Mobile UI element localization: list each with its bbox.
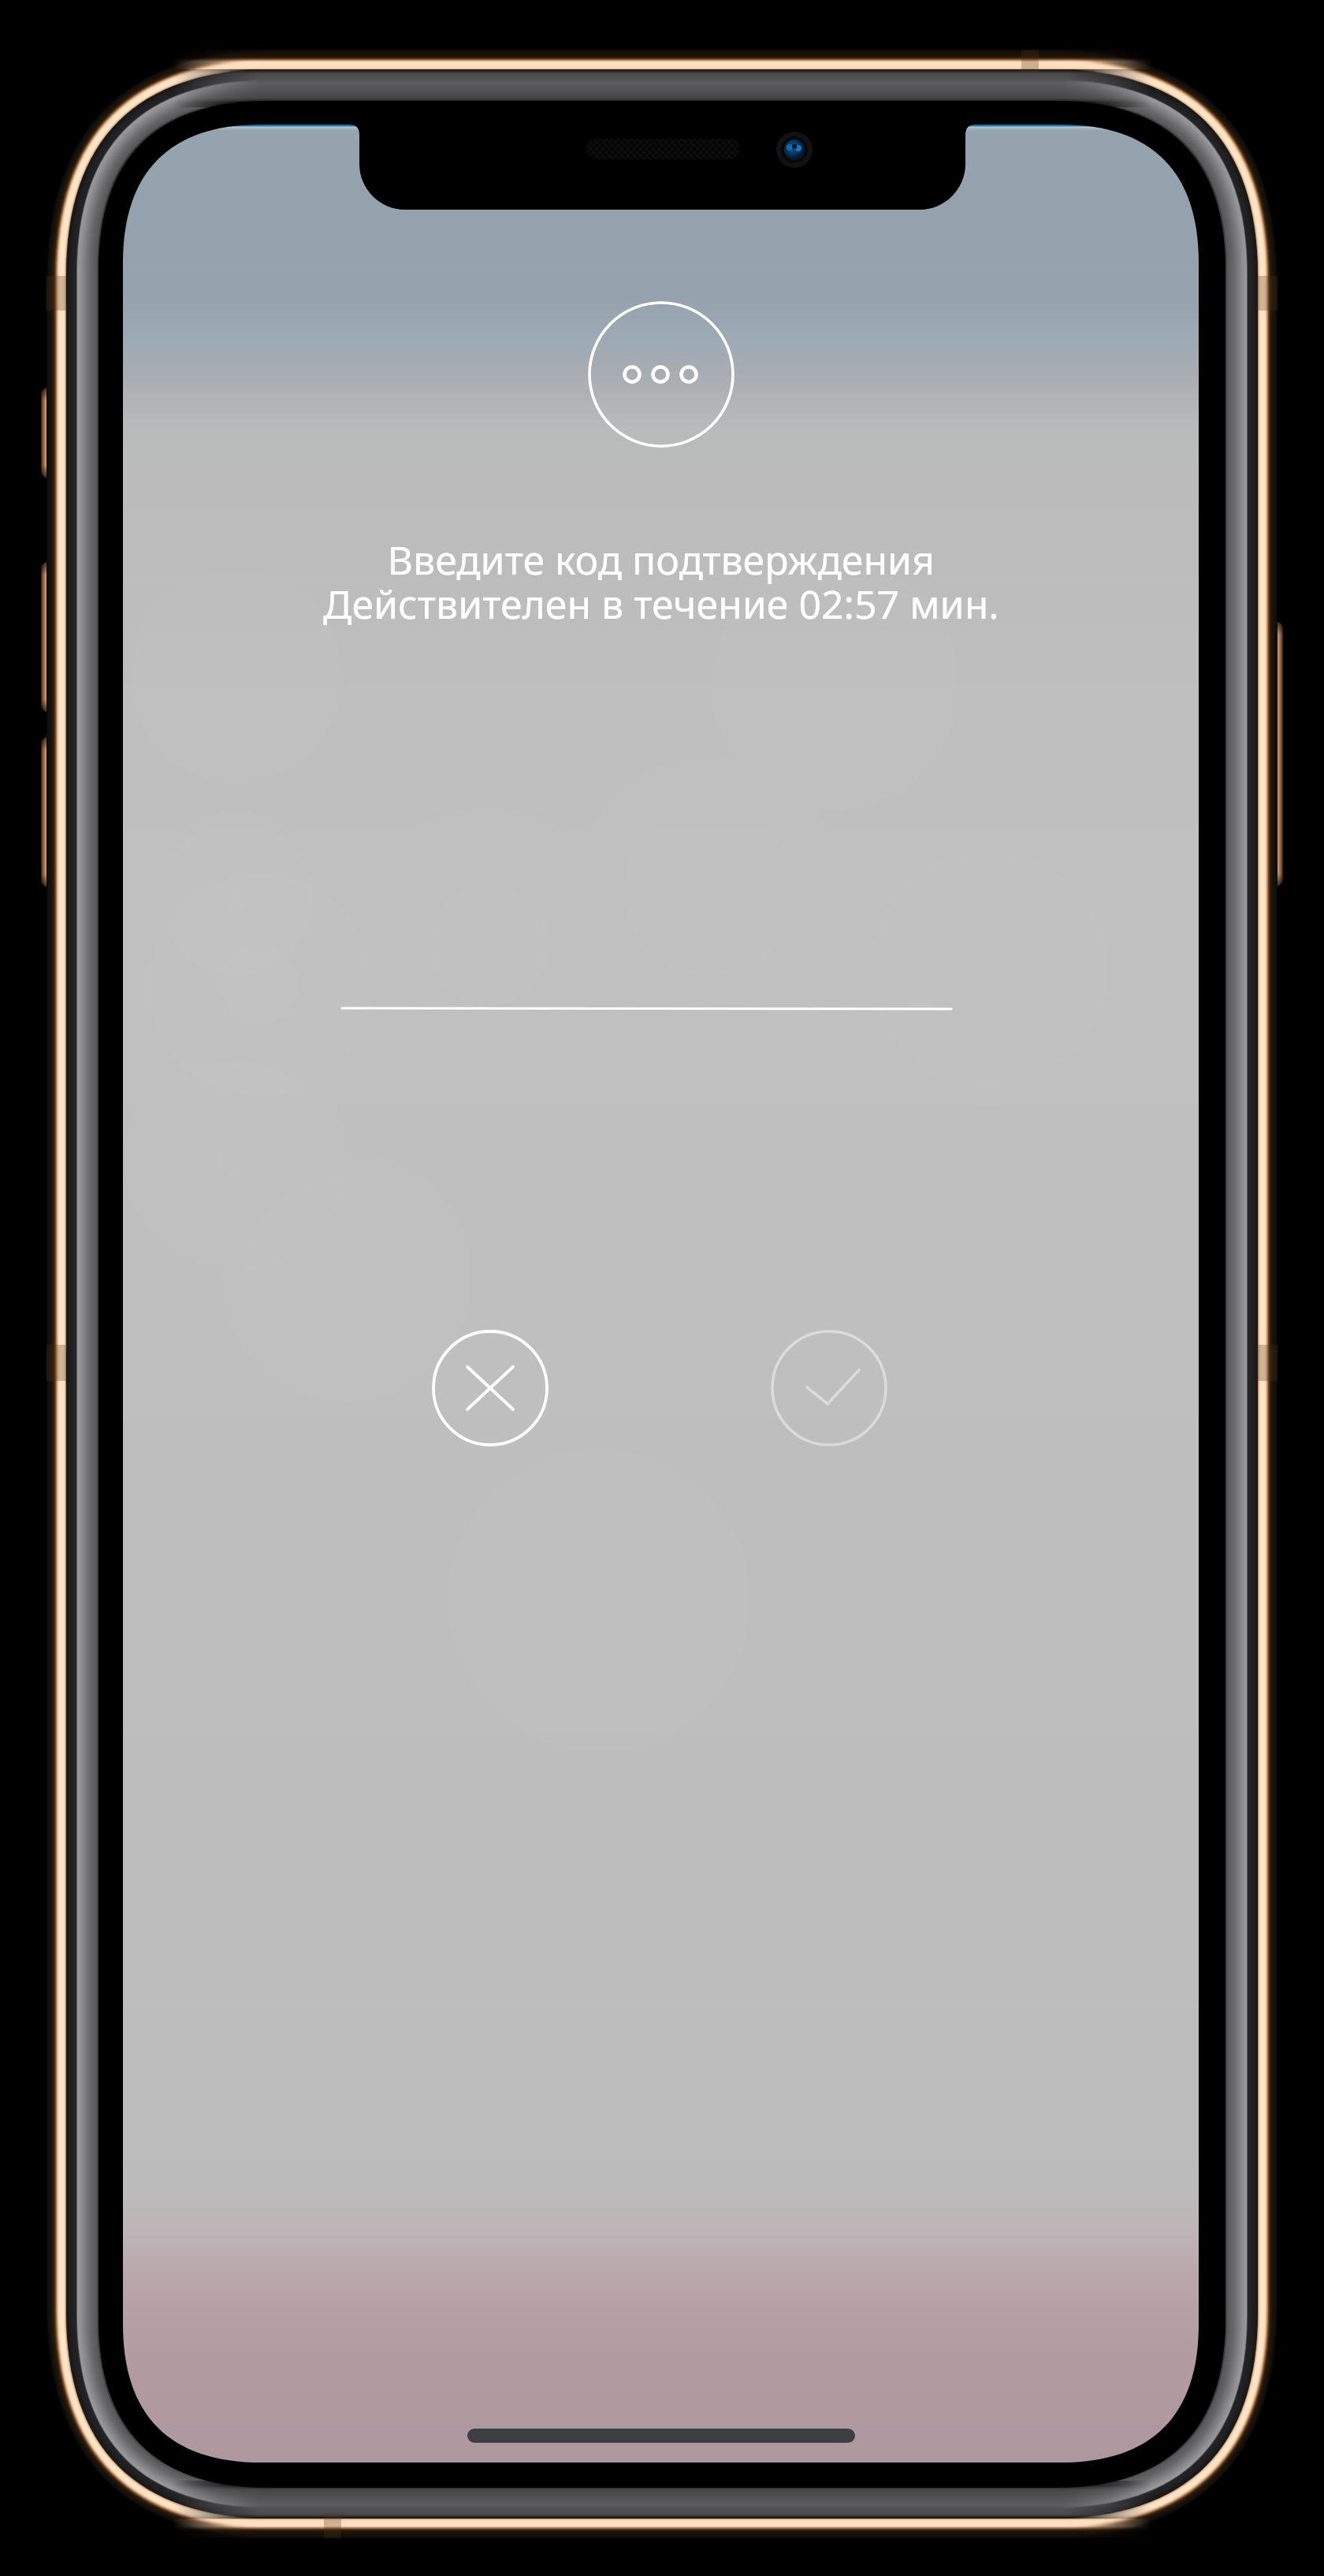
button[interactable]: Confirm: [772, 1331, 887, 1446]
button[interactable]: Cancel: [433, 1331, 548, 1446]
button[interactable]: More options: [589, 303, 733, 446]
button[interactable]: Confirmation code input: [342, 938, 951, 1017]
